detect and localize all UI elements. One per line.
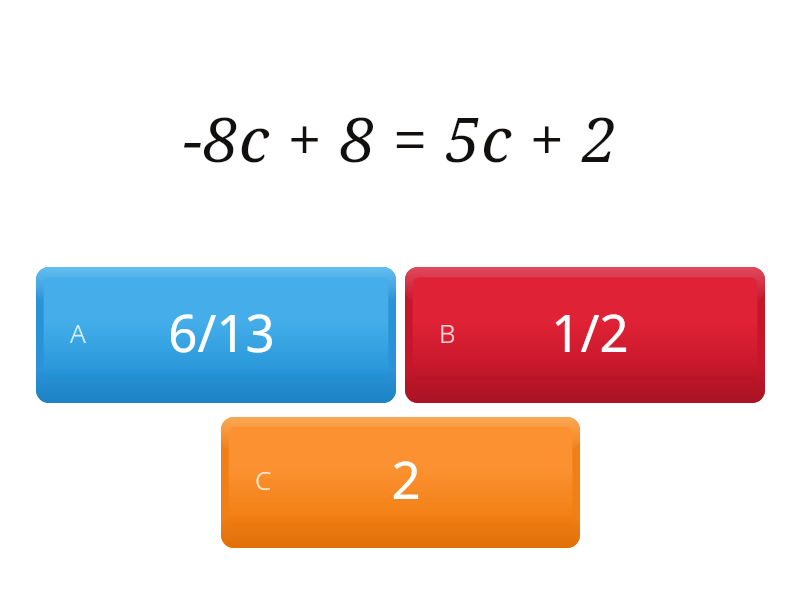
staticText: B — [439, 315, 456, 350]
staticText: −8c + 8 = 5c + 2 — [183, 96, 618, 180]
staticText: 2 — [391, 444, 421, 513]
staticText: 1/2 — [551, 297, 629, 366]
staticText: 6/13 — [168, 297, 275, 366]
button[interactable]: A — [36, 267, 396, 403]
button[interactable]: B — [405, 267, 765, 403]
staticText: C — [255, 462, 272, 497]
staticText: A — [70, 315, 86, 350]
button[interactable]: C — [221, 417, 580, 548]
